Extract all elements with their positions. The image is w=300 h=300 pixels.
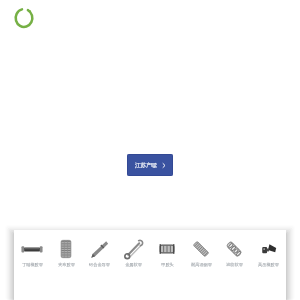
button[interactable]: 高压橡胶管 [252, 236, 284, 267]
staticText: 甲胶头 [161, 262, 174, 267]
button[interactable]: 金属软管 [117, 236, 149, 267]
staticText: 丁睛橡胶管 [22, 262, 43, 267]
button[interactable]: 江苏产噬 [127, 154, 173, 176]
button[interactable]: 夹布胶管 [50, 236, 82, 267]
button[interactable]: 耐高温钢管 [185, 236, 217, 267]
button[interactable]: 甲胶头 [151, 236, 183, 267]
button[interactable]: 铝合金导管 [83, 236, 115, 267]
staticText: 耐高温钢管 [191, 262, 212, 267]
button[interactable]: 波纹软管 [218, 236, 250, 267]
button[interactable]: Logo [12, 6, 36, 30]
staticText: 江苏产噬 [135, 162, 157, 169]
staticText: 铝合金导管 [89, 262, 110, 267]
staticText: 波纹软管 [226, 262, 243, 267]
staticText: 金属软管 [125, 262, 142, 267]
staticText: 夹布胶管 [58, 262, 75, 267]
button[interactable]: 丁睛橡胶管 [16, 236, 48, 267]
staticText: 高压橡胶管 [258, 262, 279, 267]
